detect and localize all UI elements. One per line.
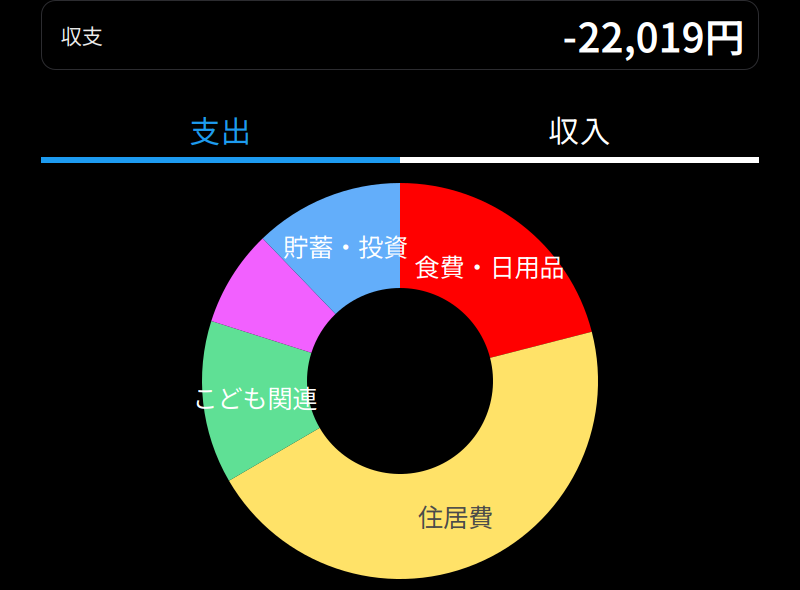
staticText: 支出 <box>189 107 251 152</box>
staticText: 収入 <box>548 107 610 152</box>
button[interactable]: 支出 <box>41 102 400 163</box>
button[interactable]: 収入 <box>400 102 759 163</box>
button[interactable]: 収支 <box>41 0 758 69</box>
staticText: 貯蓄・投資 <box>283 227 408 264</box>
staticText: こども関連 <box>192 379 317 415</box>
staticText: 住居費 <box>418 498 493 534</box>
staticText: 食費・日用品 <box>414 247 564 284</box>
staticText: -22,019円 <box>562 6 744 64</box>
staticText: 収支 <box>60 20 102 50</box>
